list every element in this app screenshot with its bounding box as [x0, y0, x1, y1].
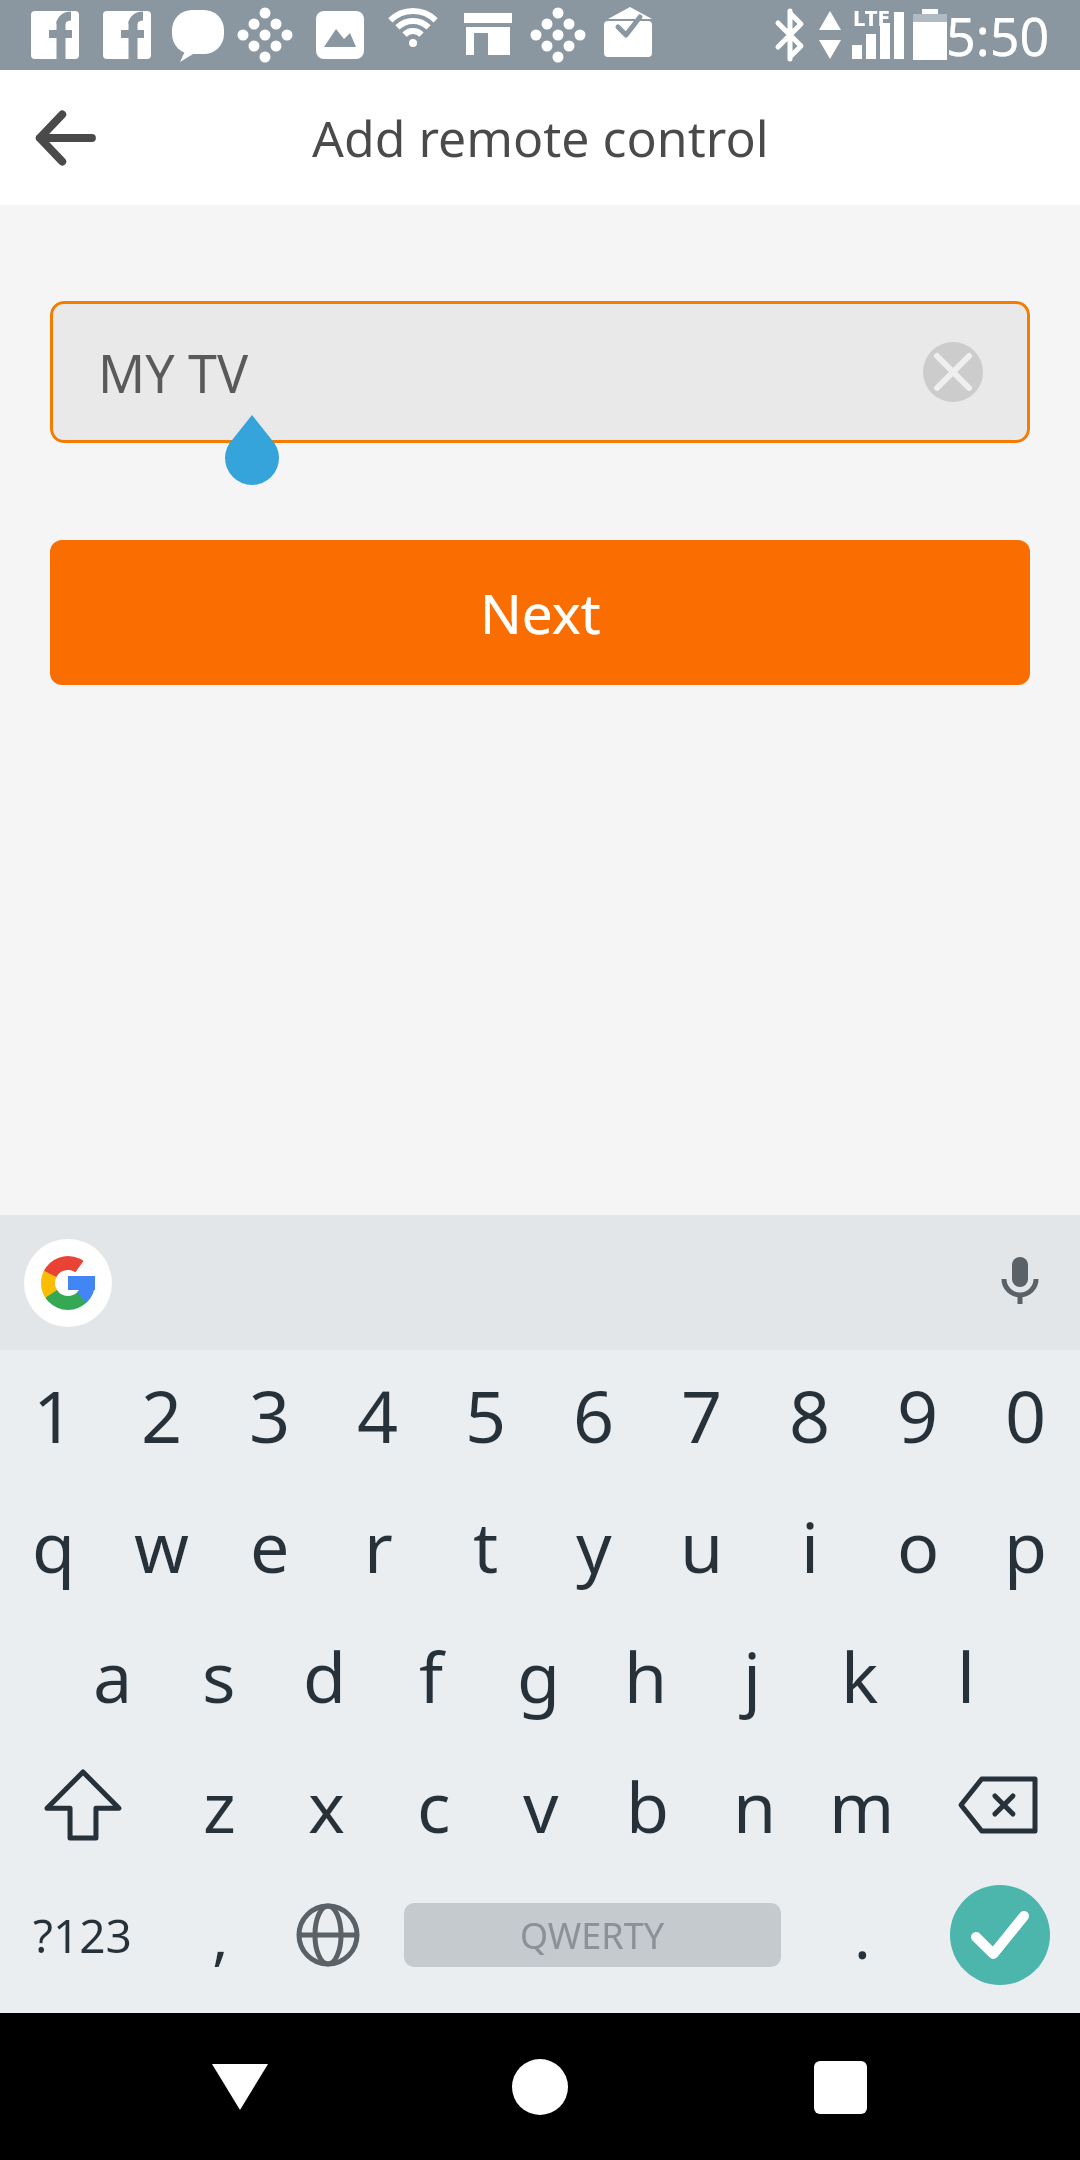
button[interactable]: 3	[216, 1350, 324, 1480]
button[interactable]: 8	[756, 1350, 864, 1480]
button[interactable]: s	[166, 1610, 272, 1740]
staticText: ?123	[33, 1904, 132, 1967]
button[interactable]: a	[60, 1610, 166, 1740]
button[interactable]: 6	[540, 1350, 648, 1480]
button[interactable]: QWERTY	[404, 1903, 781, 1967]
button[interactable]: x	[273, 1740, 380, 1870]
staticText: LTE	[853, 2, 890, 32]
button[interactable]: v	[487, 1740, 594, 1870]
staticText: 8	[789, 1366, 831, 1464]
staticText: Next	[480, 575, 601, 650]
button[interactable]: j	[699, 1610, 806, 1740]
button[interactable]: y	[540, 1480, 648, 1610]
button[interactable]	[470, 2017, 610, 2157]
button[interactable]: 4	[324, 1350, 432, 1480]
staticText: 7	[681, 1366, 723, 1464]
staticText: r	[364, 1498, 393, 1593]
button[interactable]: c	[380, 1740, 487, 1870]
staticText: 6	[573, 1366, 615, 1464]
staticText: f	[419, 1628, 444, 1723]
button[interactable]: z	[165, 1740, 273, 1870]
button[interactable]	[275, 1870, 380, 2000]
staticText: 2	[141, 1366, 183, 1464]
button[interactable]: o	[864, 1480, 972, 1610]
button[interactable]: r	[324, 1480, 432, 1610]
staticText: m	[829, 1758, 895, 1853]
button[interactable]: h	[592, 1610, 699, 1740]
staticText: i	[801, 1498, 820, 1593]
button[interactable]: 1	[0, 1350, 108, 1480]
staticText: p	[1004, 1498, 1048, 1593]
button[interactable]	[990, 1253, 1050, 1313]
button[interactable]: d	[272, 1610, 378, 1740]
staticText: 4	[357, 1366, 399, 1464]
button[interactable]: f	[378, 1610, 485, 1740]
button[interactable]: b	[594, 1740, 701, 1870]
staticText: n	[733, 1758, 777, 1853]
button[interactable]	[0, 1740, 165, 1870]
staticText: e	[250, 1498, 290, 1593]
button[interactable]: MY TV	[50, 301, 1030, 443]
staticText: l	[957, 1628, 976, 1723]
button[interactable]: 0	[972, 1350, 1080, 1480]
button[interactable]	[170, 2017, 310, 2157]
button[interactable]: 2	[108, 1350, 216, 1480]
staticText: ,	[212, 1893, 229, 1977]
staticText: x	[308, 1758, 346, 1853]
staticText: MY TV	[98, 337, 249, 408]
staticText: 3	[249, 1366, 291, 1464]
button[interactable]	[770, 2017, 910, 2157]
button[interactable]: q	[0, 1480, 108, 1610]
button[interactable]: ?123	[0, 1870, 165, 2000]
button[interactable]: 9	[864, 1350, 972, 1480]
staticText: v	[523, 1758, 559, 1853]
staticText: y	[576, 1498, 612, 1593]
staticText: z	[203, 1758, 236, 1853]
staticText: QWERTY	[520, 1911, 665, 1960]
staticText: t	[473, 1498, 499, 1593]
staticText: 0	[1005, 1366, 1047, 1464]
staticText: k	[841, 1628, 879, 1723]
button[interactable]	[923, 342, 983, 402]
staticText: b	[626, 1758, 670, 1853]
staticText: 1	[33, 1366, 75, 1464]
staticText: q	[32, 1498, 76, 1593]
button[interactable]: g	[485, 1610, 592, 1740]
staticText: o	[897, 1498, 940, 1593]
button[interactable]: i	[756, 1480, 864, 1610]
button[interactable]: 7	[648, 1350, 756, 1480]
button[interactable]: k	[806, 1610, 913, 1740]
button[interactable]	[915, 1740, 1080, 1870]
staticText: 5:50	[946, 0, 1050, 70]
button[interactable]: t	[432, 1480, 540, 1610]
staticText: w	[134, 1498, 190, 1593]
button[interactable]	[30, 103, 100, 173]
staticText: s	[202, 1628, 236, 1723]
button[interactable]: p	[972, 1480, 1080, 1610]
staticText: .	[854, 1893, 871, 1977]
staticText: j	[743, 1628, 762, 1723]
button[interactable]: Next	[50, 540, 1030, 685]
button[interactable]: ,	[165, 1870, 275, 2000]
button[interactable]: e	[216, 1480, 324, 1610]
staticText: Add remote control	[312, 104, 769, 172]
staticText: d	[303, 1628, 347, 1723]
button[interactable]: 5	[432, 1350, 540, 1480]
staticText: g	[517, 1628, 561, 1723]
button[interactable]: u	[648, 1480, 756, 1610]
button[interactable]	[24, 1239, 112, 1327]
staticText: u	[680, 1498, 724, 1593]
staticText: h	[624, 1628, 668, 1723]
button[interactable]: w	[108, 1480, 216, 1610]
staticText: 5	[465, 1366, 507, 1464]
button[interactable]: .	[805, 1870, 920, 2000]
button[interactable]: n	[701, 1740, 808, 1870]
staticText: a	[93, 1628, 133, 1723]
staticText: c	[417, 1758, 451, 1853]
staticText: 9	[897, 1366, 939, 1464]
button[interactable]	[920, 1870, 1080, 2000]
button[interactable]: l	[913, 1610, 1020, 1740]
button[interactable]: m	[808, 1740, 915, 1870]
